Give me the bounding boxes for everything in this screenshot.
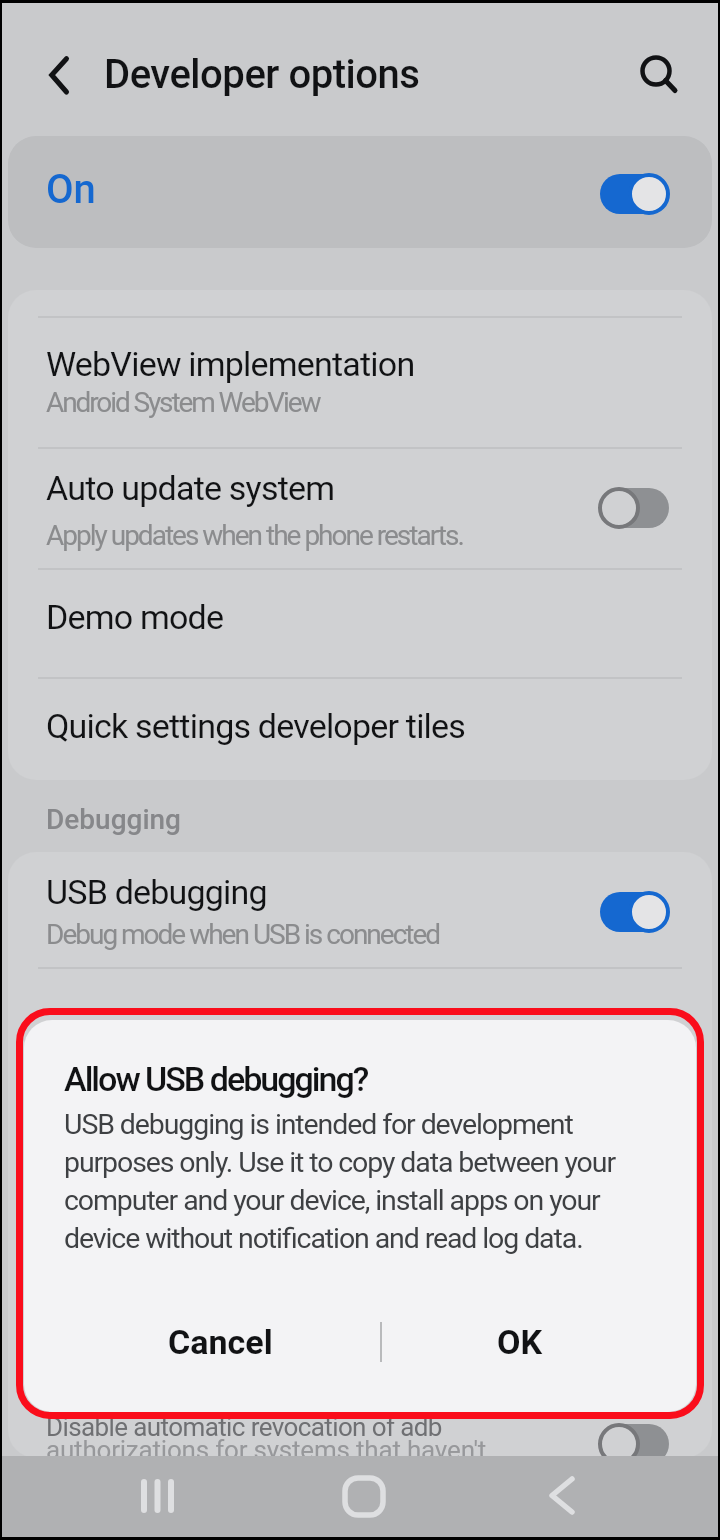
staticText: Quick settings developer tiles [46,706,466,746]
button[interactable] [598,1422,670,1458]
button[interactable] [598,890,670,934]
staticText: Android System WebView [46,386,320,419]
button[interactable] [628,43,684,99]
button[interactable]: Auto update system [8,447,712,568]
staticText: USB debugging [46,872,267,912]
staticText: Allow USB debugging? [64,1059,368,1099]
button[interactable]: Quick settings developer tiles [8,677,712,780]
staticText: authorizations for systems that haven't [46,1435,487,1458]
button[interactable]: Cancel [90,1304,350,1380]
staticText: Debug mode when USB is connected [46,918,440,951]
staticText: Developer options [104,51,420,98]
button[interactable] [598,486,670,530]
staticText: Apply updates when the phone restarts. [46,519,463,552]
staticText: USB debugging is intended for developmen… [64,1108,615,1255]
staticText: Demo mode [46,597,224,637]
staticText: On [46,166,96,213]
button[interactable] [107,1456,207,1537]
staticText: Debugging [46,803,181,836]
staticText: Cancel [168,1322,273,1362]
button[interactable]: On [8,136,712,248]
button[interactable] [598,172,670,216]
button[interactable]: WebView implementation [8,316,712,447]
button[interactable]: Demo mode [8,568,712,677]
button[interactable] [314,1456,414,1537]
staticText: Disable automatic revocation of adb [46,1412,442,1442]
staticText: Auto update system [46,468,335,508]
button[interactable] [30,48,86,104]
button[interactable] [513,1456,613,1537]
button[interactable]: OK [390,1304,650,1380]
staticText: OK [497,1322,543,1362]
staticText: WebView implementation [46,344,415,384]
button[interactable]: USB debugging [8,852,712,967]
